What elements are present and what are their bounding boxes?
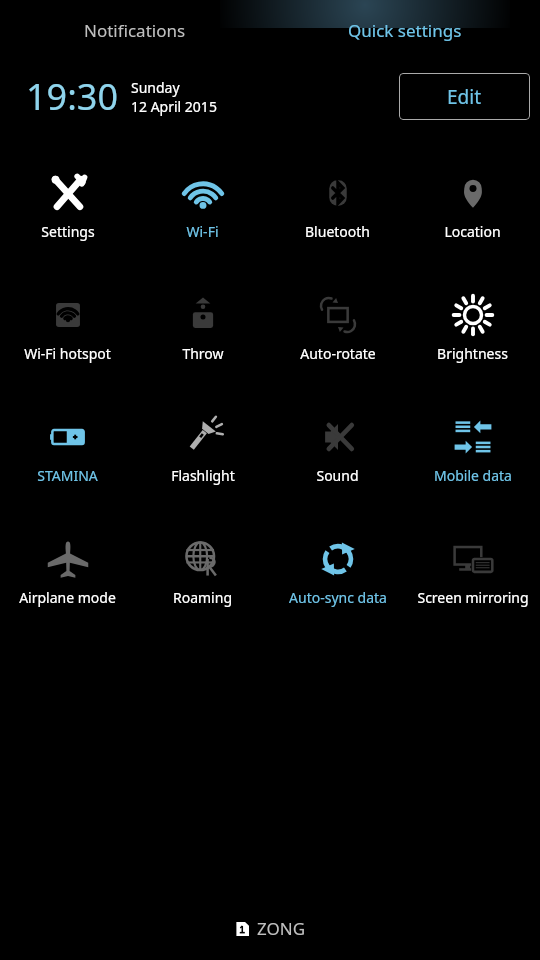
- button[interactable]: SIM 1: [227, 913, 314, 944]
- button[interactable]: Auto-rotate: [270, 276, 405, 398]
- staticText: Edit: [447, 84, 482, 110]
- button[interactable]: Throw: [135, 276, 270, 398]
- button[interactable]: Mobile data: [405, 398, 540, 520]
- other: SIM 1: [235, 922, 249, 936]
- staticText: Auto-sync data: [289, 588, 387, 607]
- button[interactable]: Airplane mode: [0, 520, 135, 642]
- staticText: Bluetooth: [305, 222, 370, 241]
- staticText: STAMINA: [37, 466, 98, 485]
- staticText: Wi-Fi: [186, 222, 219, 241]
- staticText: Roaming: [173, 588, 232, 607]
- staticText: Auto-rotate: [300, 344, 376, 363]
- button[interactable]: Wi-Fi hotspot: [0, 276, 135, 398]
- staticText: Sunday: [131, 78, 180, 97]
- staticText: Mobile data: [434, 466, 512, 485]
- staticText: Flashlight: [171, 466, 235, 485]
- button[interactable]: Sound: [270, 398, 405, 520]
- staticText: Brightness: [437, 344, 508, 363]
- staticText: Screen mirroring: [417, 588, 529, 607]
- staticText: Sound: [316, 466, 359, 485]
- staticText: 12 April 2015: [131, 97, 217, 116]
- button[interactable]: Quick settings: [270, 0, 540, 60]
- button[interactable]: Notifications: [0, 0, 270, 60]
- staticText: 19:30: [26, 72, 119, 121]
- staticText: Quick settings: [348, 19, 462, 42]
- button[interactable]: Settings: [0, 154, 135, 276]
- button[interactable]: Flashlight: [135, 398, 270, 520]
- staticText: Wi-Fi hotspot: [24, 344, 111, 363]
- staticText: Location: [444, 222, 501, 241]
- button[interactable]: Brightness: [405, 276, 540, 398]
- button[interactable]: Screen mirroring: [405, 520, 540, 642]
- button[interactable]: STAMINA: [0, 398, 135, 520]
- button[interactable]: Edit: [399, 73, 530, 120]
- staticText: Airplane mode: [19, 588, 116, 607]
- staticText: Notifications: [84, 19, 186, 42]
- staticText: Throw: [182, 344, 224, 363]
- button[interactable]: Wi-Fi: [135, 154, 270, 276]
- button[interactable]: Bluetooth: [270, 154, 405, 276]
- button[interactable]: Location: [405, 154, 540, 276]
- button[interactable]: Auto-sync data: [270, 520, 405, 642]
- staticText: Settings: [41, 222, 95, 241]
- staticText: ZONG: [257, 917, 306, 940]
- button[interactable]: Roaming: [135, 520, 270, 642]
